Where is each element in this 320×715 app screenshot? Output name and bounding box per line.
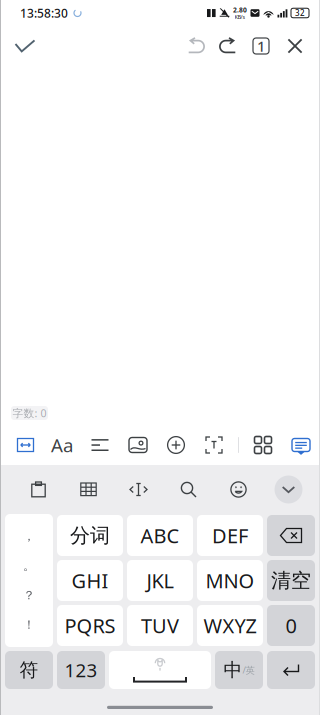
staticText: 123: [64, 658, 97, 682]
button[interactable]: Delete: [267, 515, 315, 556]
staticText: ABC: [140, 522, 179, 549]
staticText: 字数: 0: [12, 406, 46, 420]
button[interactable]: Aa: [48, 430, 76, 460]
staticText: /英: [242, 664, 254, 676]
button[interactable]: chevron: [271, 473, 305, 505]
button[interactable]: Pages: [244, 29, 278, 63]
button[interactable]: cursor: [121, 473, 155, 505]
button[interactable]: 0: [267, 605, 315, 646]
button[interactable]: scan: [200, 430, 228, 460]
button[interactable]: DEF: [197, 515, 263, 556]
button[interactable]: 清空: [267, 560, 315, 601]
button[interactable]: image: [124, 430, 152, 460]
button[interactable]: ，: [5, 514, 53, 647]
staticText: MNO: [205, 567, 254, 594]
staticText: 中: [223, 658, 242, 681]
staticText: DEF: [212, 522, 248, 549]
staticText: 分词: [70, 523, 110, 548]
button[interactable]: search: [171, 473, 205, 505]
button[interactable]: Return: [267, 651, 315, 689]
staticText: 清空: [271, 568, 311, 593]
button[interactable]: Undo: [180, 27, 212, 65]
staticText: 符: [19, 658, 38, 681]
button[interactable]: 分词: [57, 515, 123, 556]
staticText: WXYZ: [203, 612, 256, 639]
button[interactable]: 中: [215, 651, 263, 689]
button[interactable]: PQRS: [57, 605, 123, 646]
staticText: 0: [285, 612, 296, 639]
button[interactable]: grid: [249, 430, 277, 460]
button[interactable]: board: [287, 430, 315, 460]
button[interactable]: 符: [5, 651, 53, 689]
staticText: 13:58:30: [20, 5, 68, 21]
button[interactable]: TUV: [127, 605, 193, 646]
staticText: GHI: [71, 567, 108, 594]
button[interactable]: Voice input: [109, 651, 211, 689]
staticText: 32: [295, 8, 305, 18]
button[interactable]: Close: [278, 29, 312, 63]
staticText: ！: [23, 617, 35, 632]
staticText: KB/s: [234, 13, 245, 20]
staticText: 1: [257, 36, 265, 56]
staticText: TUV: [141, 612, 179, 639]
button[interactable]: clip: [21, 473, 55, 505]
button[interactable]: Redo: [212, 27, 244, 65]
button[interactable]: ABC: [127, 515, 193, 556]
staticText: PQRS: [64, 612, 115, 639]
staticText: JKL: [146, 567, 173, 594]
button[interactable]: emoji: [221, 473, 255, 505]
button[interactable]: Done: [8, 28, 42, 64]
staticText: Aa: [51, 433, 73, 457]
staticText: ？: [23, 588, 35, 603]
button[interactable]: 123: [57, 651, 105, 689]
staticText: 2.80: [233, 5, 247, 14]
button[interactable]: JKL: [127, 560, 193, 601]
button[interactable]: plus: [162, 430, 190, 460]
button[interactable]: GHI: [57, 560, 123, 601]
button[interactable]: align: [86, 430, 114, 460]
button[interactable]: panel: [71, 473, 105, 505]
button[interactable]: indent: [11, 430, 39, 460]
button[interactable]: WXYZ: [197, 605, 263, 646]
staticText: 。: [23, 558, 35, 573]
staticText: ，: [23, 529, 35, 543]
button[interactable]: MNO: [197, 560, 263, 601]
